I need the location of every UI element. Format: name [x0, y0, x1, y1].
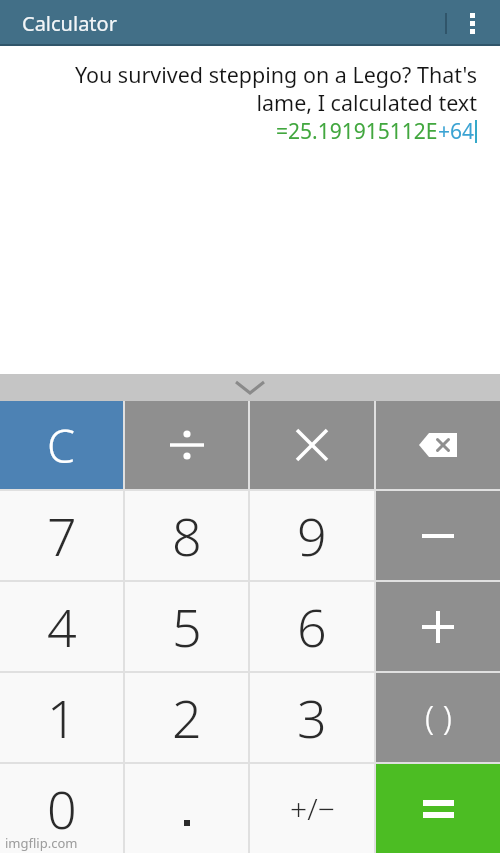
staticText: 4 — [47, 591, 77, 662]
staticText: 2 — [172, 682, 202, 753]
button[interactable] — [0, 374, 500, 401]
staticText: 7 — [47, 500, 77, 571]
button[interactable]: 8 — [125, 491, 248, 580]
button[interactable]: 6 — [250, 582, 374, 671]
button[interactable]: 7 — [0, 491, 123, 580]
staticText: imgflip.com — [5, 834, 78, 852]
staticText: =25.191915112E — [276, 117, 438, 146]
button[interactable]: 4 — [0, 582, 123, 671]
button[interactable]: C — [0, 401, 123, 489]
staticText: 3 — [297, 682, 327, 753]
button[interactable] — [470, 13, 475, 34]
button[interactable]: ( ) — [376, 673, 500, 762]
button[interactable]: 3 — [250, 673, 374, 762]
staticText: 6 — [297, 591, 327, 662]
staticText: +/− — [290, 788, 335, 829]
button[interactable]: 9 — [250, 491, 374, 580]
button[interactable] — [376, 401, 500, 489]
button[interactable]: 2 — [125, 673, 248, 762]
button[interactable]: 5 — [125, 582, 248, 671]
staticText: 0 — [47, 773, 77, 844]
staticText: 9 — [297, 500, 327, 571]
staticText: 5 — [172, 591, 202, 662]
staticText: ( ) — [425, 695, 452, 740]
staticText: 1 — [47, 682, 77, 753]
button[interactable]: +/− — [250, 764, 374, 853]
staticText: You survived stepping on a Lego? That's … — [74, 60, 477, 117]
button[interactable] — [125, 764, 248, 853]
staticText: +64 — [438, 117, 475, 146]
button[interactable] — [125, 401, 248, 489]
staticText: 8 — [172, 500, 202, 571]
button[interactable] — [376, 491, 500, 580]
button[interactable]: 0 — [0, 764, 123, 853]
staticText: Calculator — [22, 10, 117, 37]
button[interactable] — [376, 582, 500, 671]
button[interactable] — [376, 764, 500, 853]
staticText: C — [47, 415, 76, 476]
button[interactable]: 1 — [0, 673, 123, 762]
button[interactable] — [250, 401, 374, 489]
